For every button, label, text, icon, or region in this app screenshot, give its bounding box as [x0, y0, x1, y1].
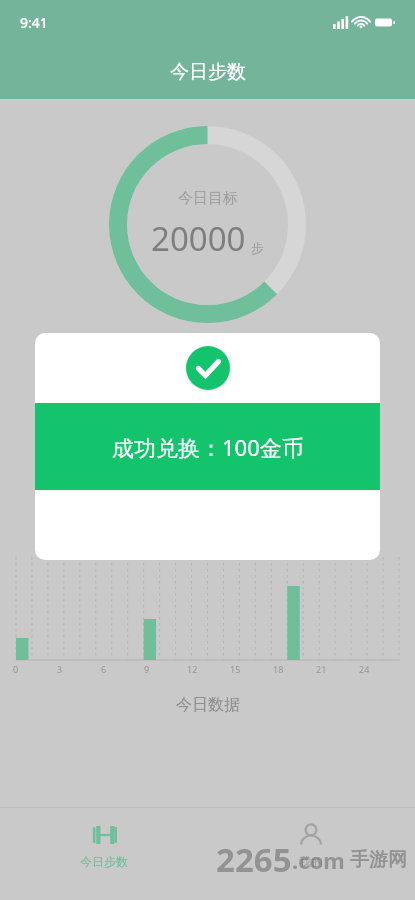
staticText: 9 [144, 663, 150, 675]
staticText: 24 [359, 663, 370, 675]
staticText: 3 [57, 663, 63, 675]
staticText: 步 [251, 240, 264, 256]
staticText: 2265 [216, 837, 292, 882]
other: 今日步数 [91, 822, 117, 848]
staticText: 0 [13, 663, 19, 675]
staticText: 今日步数 [170, 60, 246, 84]
other: 我的 [298, 822, 324, 848]
staticText: 今日目标 [178, 189, 238, 208]
button[interactable]: 我的 [207, 808, 415, 900]
staticText: 15 [230, 663, 241, 675]
staticText: 12 [187, 663, 198, 675]
staticText: 6 [101, 663, 107, 675]
staticText: 今日数据 [176, 695, 240, 715]
staticText: .com [292, 845, 345, 875]
staticText: 手游网 [350, 848, 407, 872]
button[interactable]: 今日步数 [0, 808, 207, 900]
staticText: 21 [316, 663, 327, 675]
staticText: 成功兑换：100金币 [112, 432, 304, 462]
staticText: 今日步数 [80, 854, 128, 869]
staticText: 20000 [151, 216, 246, 261]
button[interactable]: 成功兑换：100金币 [35, 333, 380, 560]
staticText: 9:41 [20, 13, 48, 32]
staticText: 18 [273, 663, 284, 675]
staticText: 我的 [299, 854, 323, 869]
